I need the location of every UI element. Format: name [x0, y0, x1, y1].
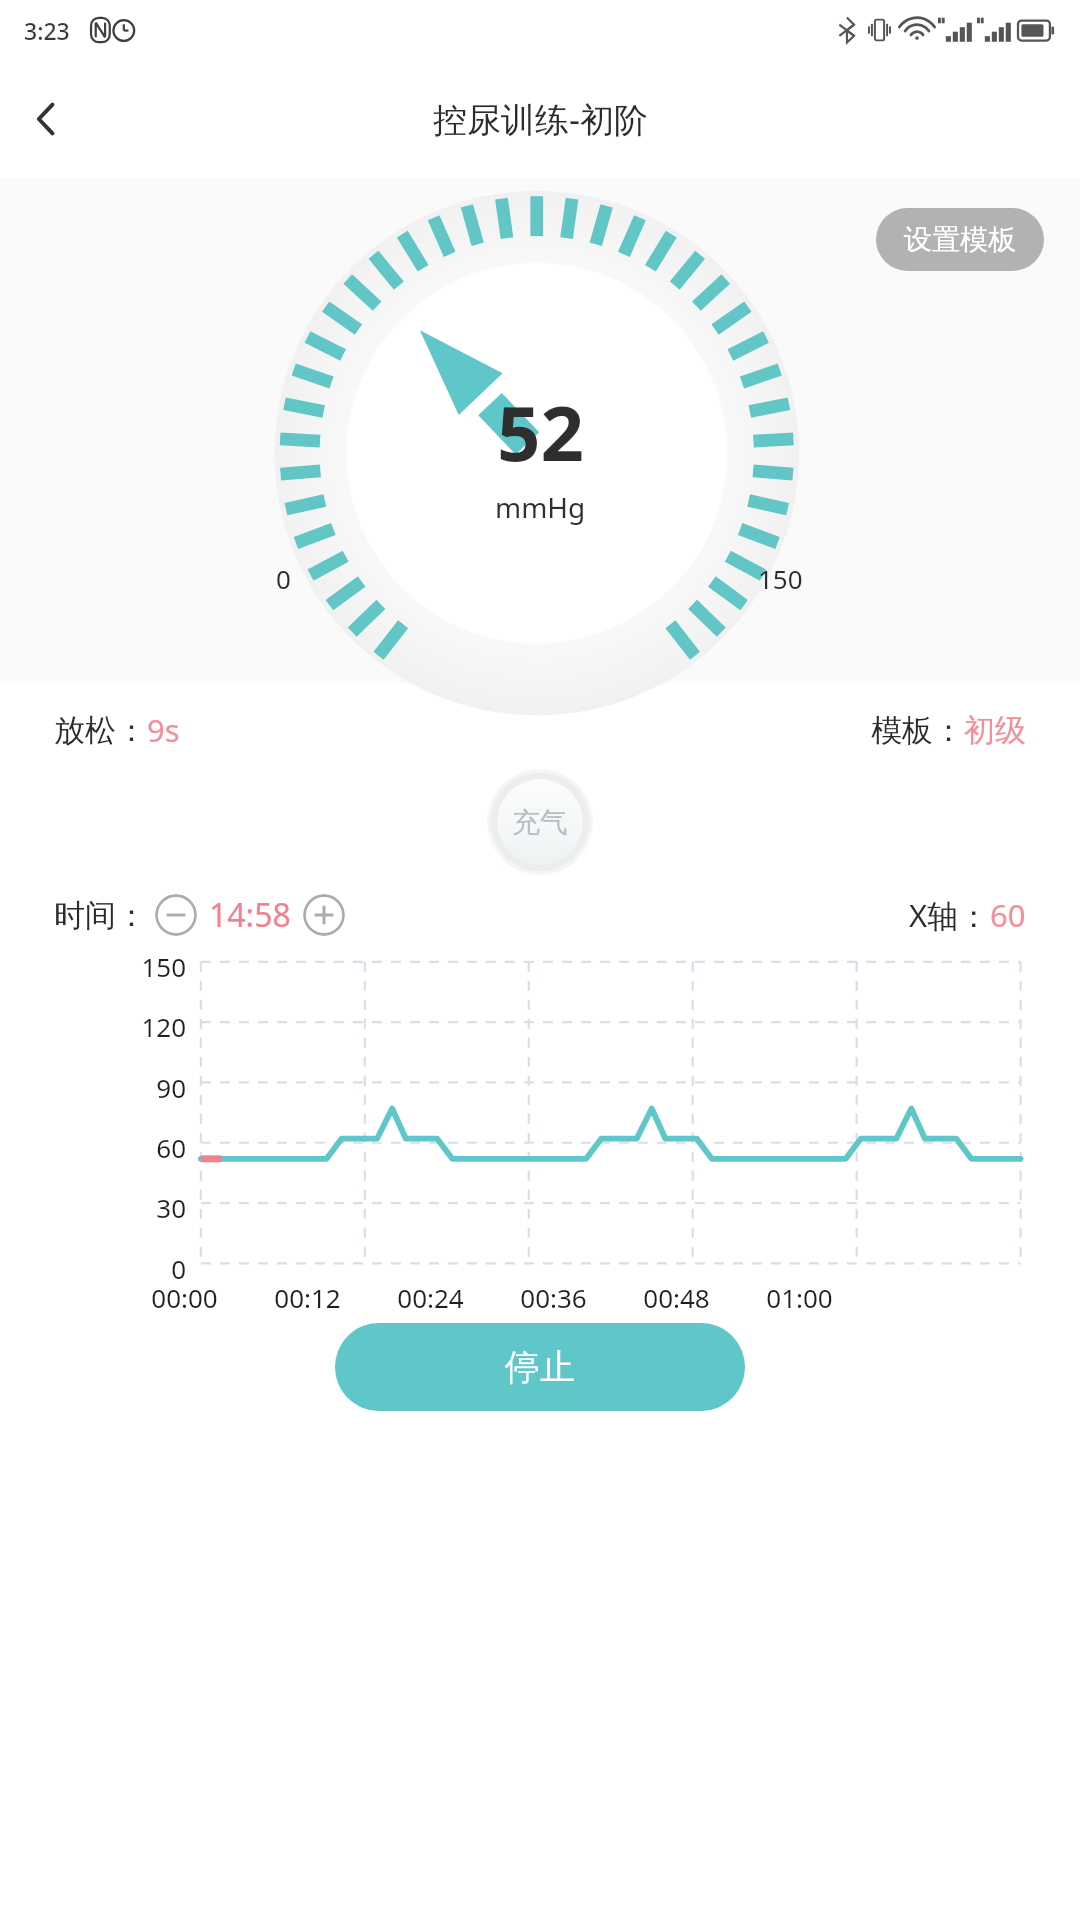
- staticText: 60: [0, 1130, 186, 1165]
- staticText: 0: [0, 1251, 186, 1286]
- button[interactable]: 停止: [335, 1323, 745, 1411]
- button[interactable]: Decrease time: [155, 894, 197, 936]
- staticText: 01:00: [738, 1280, 861, 1315]
- staticText: 放松：: [54, 711, 147, 750]
- button[interactable]: 充气: [487, 769, 593, 875]
- staticText: 控尿训练-初阶: [433, 96, 648, 142]
- staticText: 模板：: [871, 711, 964, 750]
- staticText: 150: [758, 561, 803, 596]
- staticText: 00:24: [369, 1280, 492, 1315]
- staticText: 14:58: [209, 893, 291, 937]
- staticText: 30: [0, 1190, 186, 1225]
- staticText: 120: [0, 1009, 186, 1044]
- staticText: X轴：: [909, 894, 990, 936]
- button[interactable]: Back: [8, 81, 84, 157]
- staticText: 00:12: [246, 1280, 369, 1315]
- staticText: 停止: [505, 1345, 575, 1389]
- staticText: 150: [0, 949, 186, 984]
- button[interactable]: Increase time: [303, 894, 345, 936]
- staticText: 00:36: [492, 1280, 615, 1315]
- staticText: 9s: [147, 709, 180, 751]
- staticText: 设置模板: [904, 222, 1016, 257]
- staticText: 52: [497, 380, 584, 484]
- staticText: 3:23: [24, 15, 70, 46]
- staticText: 00:48: [615, 1280, 738, 1315]
- staticText: 00:00: [123, 1280, 246, 1315]
- staticText: mmHg: [495, 488, 586, 526]
- staticText: 90: [0, 1070, 186, 1105]
- staticText: 初级: [964, 711, 1026, 750]
- staticText: 时间：: [54, 896, 147, 935]
- button[interactable]: 设置模板: [876, 208, 1044, 271]
- staticText: 60: [990, 894, 1026, 936]
- staticText: 0: [276, 561, 291, 596]
- staticText: 充气: [512, 805, 568, 840]
